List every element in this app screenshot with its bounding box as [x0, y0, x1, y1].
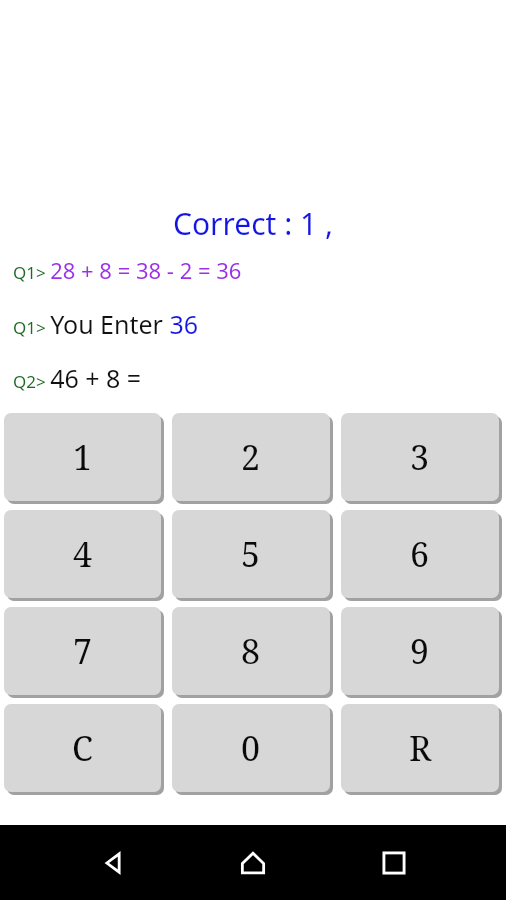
- staticText: C: [72, 725, 93, 771]
- staticText: 7: [73, 628, 93, 674]
- staticText: 9: [410, 628, 430, 674]
- button[interactable]: Back: [85, 835, 141, 891]
- button[interactable]: 9: [341, 607, 499, 695]
- staticText: 1: [73, 434, 93, 480]
- button[interactable]: Recent apps: [366, 835, 422, 891]
- staticText: Q2> 46 + 8 =: [13, 361, 142, 395]
- staticText: Correct : 1 ,: [173, 203, 334, 244]
- button[interactable]: C: [4, 704, 161, 792]
- button[interactable]: 6: [341, 510, 499, 598]
- staticText: 6: [410, 531, 430, 577]
- button[interactable]: 8: [172, 607, 330, 695]
- staticText: 8: [241, 628, 261, 674]
- button[interactable]: Home: [225, 835, 281, 891]
- staticText: Q1> 28 + 8 = 38 - 2 = 36: [13, 255, 242, 285]
- button[interactable]: 7: [4, 607, 161, 695]
- button[interactable]: 1: [4, 413, 161, 501]
- button[interactable]: 2: [172, 413, 330, 501]
- staticText: 4: [73, 531, 93, 577]
- staticText: 2: [241, 434, 261, 480]
- staticText: Q1> You Enter 36: [13, 307, 199, 341]
- button[interactable]: 0: [172, 704, 330, 792]
- button[interactable]: R: [341, 704, 499, 792]
- staticText: 0: [241, 725, 261, 771]
- staticText: 5: [241, 531, 261, 577]
- button[interactable]: 3: [341, 413, 499, 501]
- button[interactable]: 5: [172, 510, 330, 598]
- staticText: 3: [410, 434, 430, 480]
- staticText: R: [409, 725, 432, 771]
- button[interactable]: 4: [4, 510, 161, 598]
